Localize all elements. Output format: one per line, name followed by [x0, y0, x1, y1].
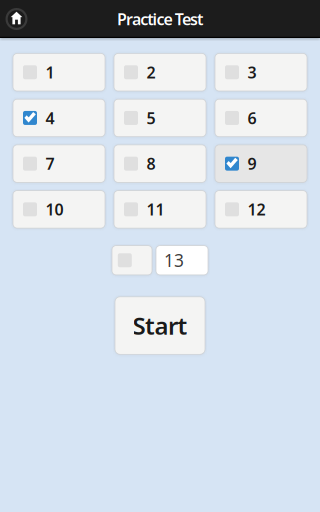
button[interactable]: 2 — [114, 53, 206, 91]
staticText: 2 — [146, 62, 155, 83]
staticText: 7 — [45, 153, 54, 174]
button[interactable]: 3 — [215, 53, 307, 91]
button[interactable]: 9 — [215, 145, 307, 182]
button[interactable]: 7 — [13, 145, 105, 182]
button[interactable]: 11 — [114, 191, 206, 228]
staticText: 1 — [45, 62, 54, 83]
button[interactable]: 1 — [13, 53, 105, 91]
staticText: Practice Test — [117, 8, 203, 30]
staticText: 13 — [164, 249, 184, 272]
button[interactable]: 5 — [114, 99, 206, 137]
staticText: 10 — [45, 199, 63, 220]
button[interactable]: 4 — [13, 99, 105, 137]
staticText: 8 — [146, 153, 155, 174]
staticText: Start — [133, 310, 187, 341]
staticText: 4 — [45, 107, 54, 128]
staticText: 6 — [247, 107, 256, 128]
button[interactable]: 10 — [13, 191, 105, 228]
button[interactable]: Start — [115, 297, 205, 354]
button[interactable]: 13 — [156, 246, 208, 275]
staticText: 9 — [247, 153, 256, 174]
button[interactable]: 6 — [215, 99, 307, 137]
button[interactable]: Home — [0, 0, 33, 37]
button[interactable]: 8 — [114, 145, 206, 182]
staticText: 11 — [146, 199, 164, 220]
staticText: 12 — [247, 199, 265, 220]
button[interactable]: Use custom question count — [112, 246, 152, 275]
staticText: 5 — [146, 107, 155, 128]
staticText: 3 — [247, 62, 256, 83]
button[interactable]: 12 — [215, 191, 307, 228]
